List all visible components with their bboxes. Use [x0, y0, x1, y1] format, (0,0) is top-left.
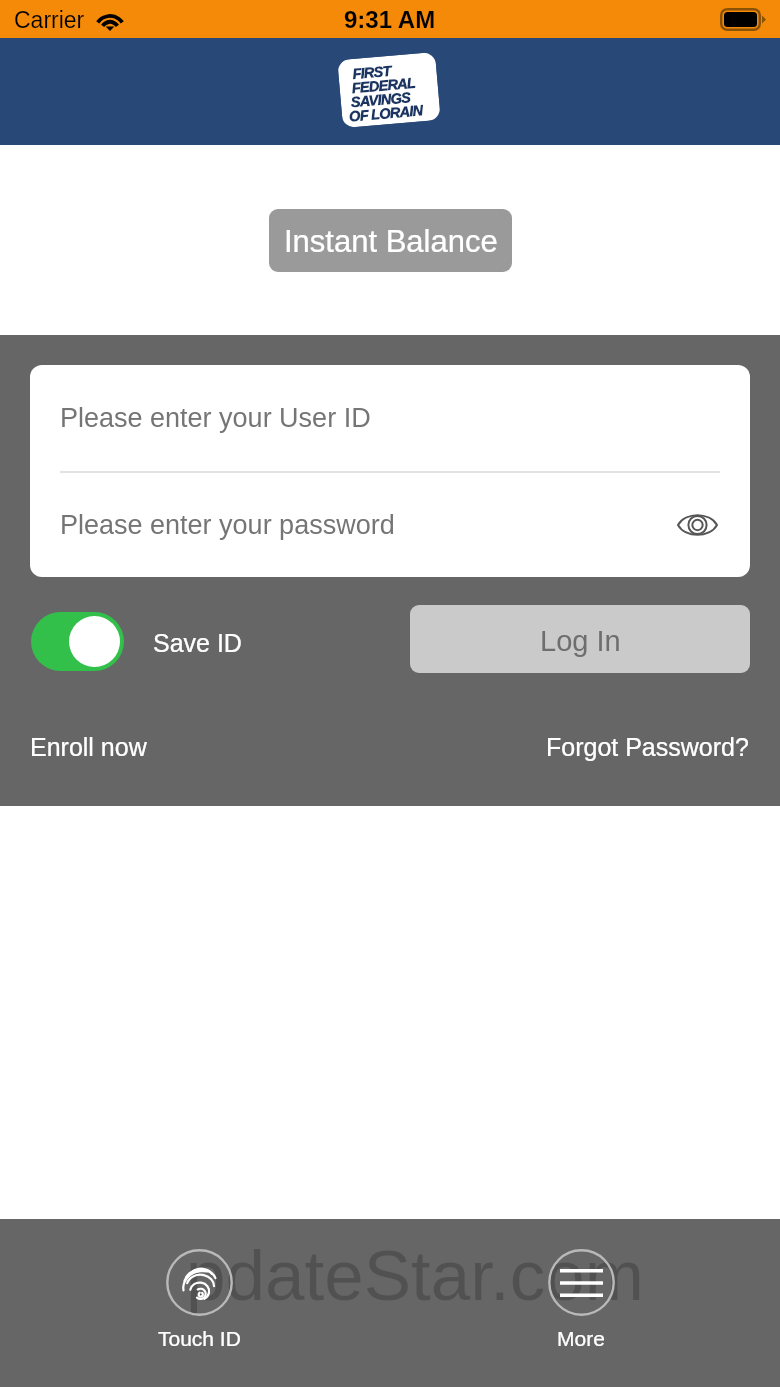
staticText: Touch ID — [158, 1327, 241, 1350]
staticText: FEDERAL — [351, 75, 416, 96]
staticText: SAVINGS — [350, 89, 411, 110]
button[interactable]: Forgot Password? — [546, 733, 749, 761]
staticText: OF LORAIN — [348, 102, 424, 125]
staticText: More — [557, 1327, 605, 1350]
button[interactable]: Please enter your password — [30, 472, 750, 577]
button[interactable]: Enroll now — [30, 733, 147, 761]
staticText: Save ID — [153, 629, 242, 657]
button[interactable]: More — [521, 1249, 641, 1350]
button[interactable]: Show password — [670, 498, 724, 552]
staticText: Carrier — [14, 7, 85, 33]
staticText: FIRST — [352, 63, 392, 82]
staticText: 9:31 AM — [344, 6, 436, 33]
button[interactable]: Instant Balance — [269, 209, 512, 272]
button[interactable]: Please enter your User ID — [30, 365, 750, 471]
staticText: Log In — [540, 625, 621, 657]
button[interactable]: Log In — [410, 605, 750, 673]
staticText: pdateStar.com — [186, 1236, 644, 1315]
staticText: Please enter your password — [60, 510, 395, 540]
button[interactable]: Touch ID — [139, 1249, 259, 1350]
staticText: Instant Balance — [284, 224, 498, 259]
staticText: Please enter your User ID — [60, 403, 371, 433]
button[interactable] — [31, 612, 124, 671]
